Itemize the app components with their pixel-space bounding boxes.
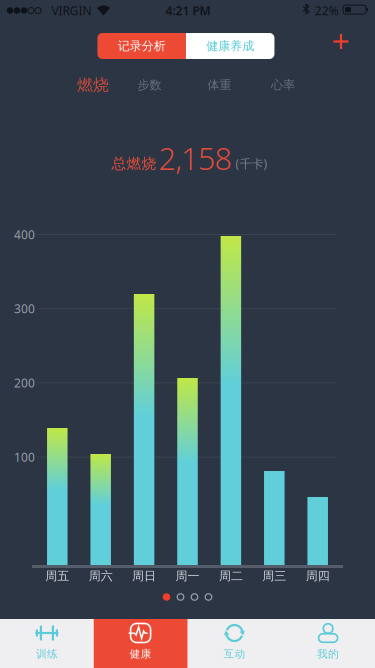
staticText: 步数	[137, 78, 161, 92]
staticText: 我的	[317, 647, 339, 660]
staticText: 周二	[219, 569, 243, 583]
staticText: 互动	[223, 647, 245, 660]
button[interactable]: 步数	[137, 78, 161, 92]
staticText: VIRGIN	[51, 2, 91, 18]
staticText: 总燃烧	[111, 154, 156, 172]
staticText: 训练	[36, 647, 58, 660]
button[interactable]: 健康养成	[186, 33, 274, 59]
staticText: 周四	[306, 569, 330, 583]
button[interactable]: 记录分析	[97, 33, 186, 59]
staticText: 300	[14, 301, 35, 317]
button[interactable]: 健康	[94, 619, 187, 668]
staticText: 体重	[207, 78, 231, 92]
staticText: 记录分析	[118, 39, 166, 53]
staticText: 周一	[175, 569, 199, 583]
button[interactable]: Add	[333, 34, 348, 49]
staticText: 4:21 PM	[165, 2, 210, 18]
staticText: (千卡)	[235, 155, 267, 171]
staticText: 周五	[45, 569, 69, 583]
staticText: 200	[14, 375, 35, 391]
staticText: 健康养成	[206, 39, 254, 53]
staticText: 2,158	[158, 138, 233, 178]
staticText: 燃烧	[77, 75, 109, 95]
staticText: 周三	[262, 569, 286, 583]
staticText: 健康	[130, 647, 152, 660]
button[interactable]: 心率	[271, 78, 295, 92]
staticText: 心率	[271, 78, 295, 92]
staticText: 周日	[132, 569, 156, 583]
button[interactable]: 训练	[0, 619, 94, 668]
button[interactable]: 我的	[281, 619, 375, 668]
staticText: 22%	[315, 2, 339, 18]
staticText: 400	[14, 226, 35, 242]
button[interactable]: 燃烧	[77, 75, 109, 95]
button[interactable]: 体重	[207, 78, 231, 92]
button[interactable]: 互动	[187, 619, 281, 668]
staticText: 100	[14, 449, 35, 465]
staticText: 周六	[89, 569, 113, 583]
